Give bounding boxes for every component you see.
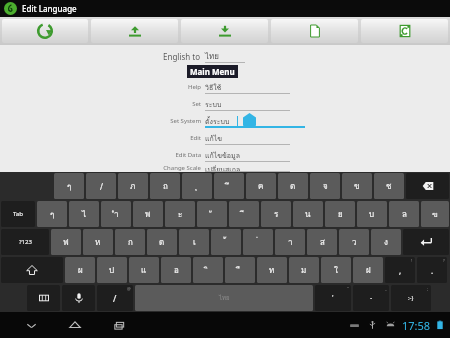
button[interactable]: น — [293, 201, 323, 227]
button[interactable]: ื — [225, 257, 255, 283]
button[interactable]: จ — [310, 173, 340, 199]
button[interactable]: ก — [115, 229, 145, 255]
button[interactable]: Home — [58, 313, 92, 337]
button[interactable]: Backspace — [406, 173, 449, 199]
staticText: ไทย — [219, 293, 230, 303]
button[interactable]: Recent apps — [102, 313, 136, 337]
staticText: ห — [95, 236, 101, 249]
staticText: ม — [301, 264, 307, 277]
staticText: ำ — [114, 208, 119, 221]
button[interactable]: ถ — [150, 173, 180, 199]
staticText: แ — [141, 264, 147, 277]
button[interactable]: ส — [307, 229, 337, 255]
staticText: เ — [193, 236, 196, 249]
button[interactable]: ช — [374, 173, 404, 199]
button[interactable]: ๆ — [54, 173, 84, 199]
button[interactable]: Tab — [1, 201, 35, 227]
button[interactable]: ท — [257, 257, 287, 283]
button[interactable]: Shift — [1, 257, 63, 283]
staticText: ง — [384, 236, 388, 249]
button[interactable]: Download — [181, 19, 268, 43]
button[interactable]: ย — [325, 201, 355, 227]
button[interactable]: ไ — [69, 201, 99, 227]
button[interactable]: ะ — [165, 201, 195, 227]
button[interactable]: Input settings — [27, 285, 60, 311]
staticText: ฝ — [366, 264, 371, 277]
button[interactable]: ล — [389, 201, 419, 227]
button[interactable]: ใ — [321, 257, 351, 283]
staticText: " — [347, 286, 349, 291]
button[interactable]: Voice input — [62, 285, 95, 311]
staticText: Edit Data — [175, 151, 201, 159]
button[interactable]: Edit Language — [0, 0, 450, 17]
button[interactable]: Revert — [2, 19, 88, 43]
button[interactable]: พ — [133, 201, 163, 227]
button[interactable]: Upload — [91, 19, 178, 43]
button[interactable]: English to — [143, 49, 308, 63]
button[interactable]: อ — [161, 257, 191, 283]
button[interactable]: ฟ — [51, 229, 81, 255]
button[interactable]: ้ — [211, 229, 241, 255]
button[interactable]: Main Menu — [143, 65, 308, 78]
button[interactable]: Sync — [361, 19, 448, 43]
button[interactable]: ี — [229, 201, 259, 227]
button[interactable]: ร — [261, 201, 291, 227]
button[interactable]: ผ — [65, 257, 95, 283]
button[interactable]: ฝ — [353, 257, 383, 283]
button[interactable]: , — [385, 257, 415, 283]
button[interactable]: ?123 — [1, 229, 49, 255]
button[interactable]: - — [353, 285, 389, 311]
button[interactable]: Hide keyboard — [14, 313, 48, 337]
button[interactable]: :-) — [391, 285, 431, 311]
button[interactable]: New — [271, 19, 358, 43]
button[interactable]: ั — [197, 201, 227, 227]
button[interactable]: ิ — [193, 257, 223, 283]
button[interactable]: ห — [83, 229, 113, 255]
button[interactable]: แ — [129, 257, 159, 283]
button[interactable]: บ — [357, 201, 387, 227]
button[interactable]: Set — [143, 96, 308, 111]
button[interactable]: . — [417, 257, 447, 283]
button[interactable]: ด — [147, 229, 177, 255]
button[interactable]: ึ — [214, 173, 244, 199]
staticText: Change Scale — [163, 164, 201, 172]
button[interactable]: ' — [315, 285, 351, 311]
button[interactable]: ป — [97, 257, 127, 283]
staticText: Tab — [13, 210, 23, 218]
button[interactable]: ว — [339, 229, 369, 255]
button[interactable]: ง — [371, 229, 401, 255]
button[interactable]: Edit Data — [143, 147, 308, 162]
button[interactable]: ่ — [243, 229, 273, 255]
staticText: น — [305, 208, 311, 221]
button[interactable]: ภ — [118, 173, 148, 199]
button[interactable]: ำ — [101, 201, 131, 227]
button[interactable]: ุ — [182, 173, 212, 199]
staticText: แก้ไข — [205, 133, 223, 144]
button[interactable]: ข — [342, 173, 372, 199]
staticText: ด — [159, 236, 165, 249]
button[interactable]: Help — [143, 79, 308, 94]
button[interactable]: / — [97, 285, 133, 311]
button[interactable]: ๆ — [37, 201, 67, 227]
staticText: , — [399, 265, 402, 276]
button[interactable]: / — [86, 173, 116, 199]
staticText: ป — [109, 264, 115, 277]
staticText: ภ — [130, 180, 136, 193]
button[interactable]: Set System — [143, 113, 308, 128]
button[interactable]: Enter — [403, 229, 449, 255]
staticText: . — [431, 265, 434, 276]
button[interactable]: Change Scale — [143, 164, 308, 172]
button[interactable]: Edit — [143, 130, 308, 145]
button[interactable]: ม — [289, 257, 319, 283]
button[interactable]: ต — [278, 173, 308, 199]
staticText: ?123 — [19, 238, 32, 246]
button[interactable]: า — [275, 229, 305, 255]
button[interactable]: ฃ — [421, 201, 449, 227]
staticText: ; — [427, 286, 429, 291]
button[interactable]: เ — [179, 229, 209, 255]
staticText: ค — [258, 180, 264, 193]
staticText: ไทย — [205, 50, 219, 63]
staticText: ย — [338, 208, 343, 221]
button[interactable]: ค — [246, 173, 276, 199]
